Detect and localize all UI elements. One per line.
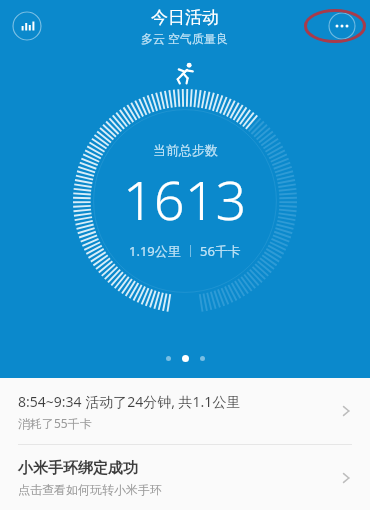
- staticText: 今日活动: [151, 7, 219, 28]
- staticText: 消耗了55千卡: [18, 415, 92, 431]
- button[interactable]: 小米手环绑定成功: [0, 445, 370, 510]
- staticText: 点击查看如何玩转小米手环: [18, 482, 162, 497]
- button[interactable]: More options: [328, 12, 356, 40]
- staticText: 当前总步数: [153, 142, 218, 158]
- staticText: 多云 空气质量良: [141, 30, 229, 46]
- button[interactable]: Statistics: [12, 11, 42, 41]
- staticText: 56千卡: [200, 242, 241, 260]
- button[interactable]: 8:54~9:34 活动了24分钟, 共1.1公里: [0, 378, 370, 444]
- staticText: 1613: [123, 162, 247, 236]
- staticText: 8:54~9:34 活动了24分钟, 共1.1公里: [18, 392, 241, 411]
- staticText: 小米手环绑定成功: [18, 459, 138, 478]
- staticText: 1.19公里: [129, 242, 181, 260]
